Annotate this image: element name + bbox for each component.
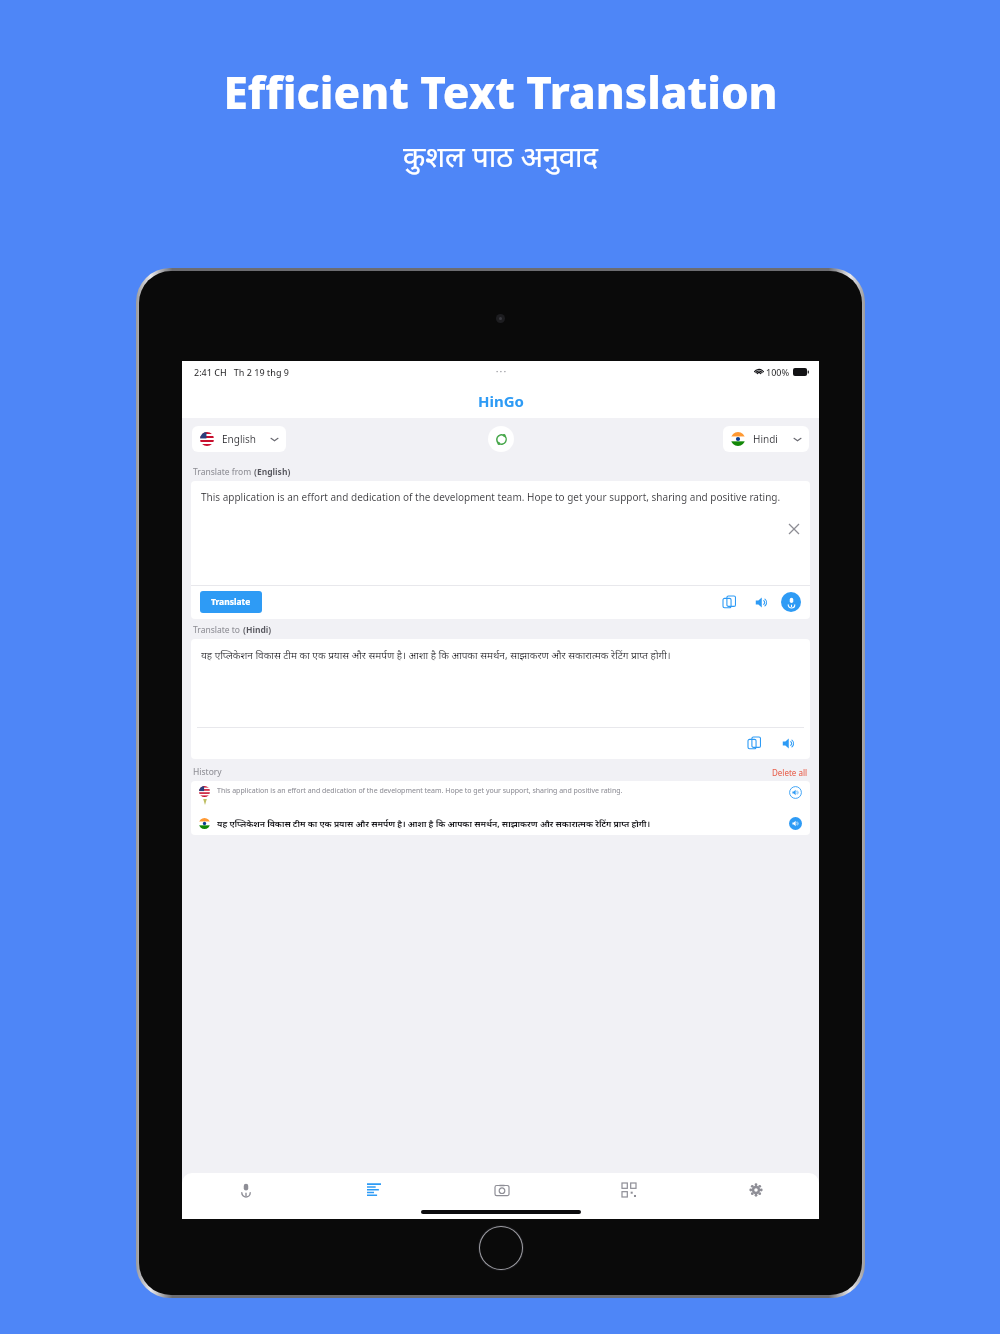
staticText: Translate [211, 596, 251, 608]
staticText: Translate from [193, 466, 254, 478]
staticText: Efficient Text Translation [223, 62, 778, 122]
staticText: कुशल पाठ अनुवाद [403, 136, 598, 175]
staticText: यह एप्लिकेशन विकास टीम का एक प्रयास और स… [217, 818, 789, 830]
button[interactable]: This application is an effort and dedica… [191, 781, 810, 835]
button[interactable]: Copy translation [745, 734, 763, 752]
staticText: यह एप्लिकेशन विकास टीम का एक प्रयास और स… [201, 648, 671, 662]
button[interactable]: Settings [692, 1173, 819, 1207]
button[interactable]: Play translation [789, 817, 802, 830]
staticText: 100% [766, 366, 790, 378]
button[interactable]: Hindi [723, 426, 809, 452]
button[interactable]: Text [310, 1173, 438, 1207]
staticText: (English) [254, 466, 291, 478]
staticText: This application is an effort and dedica… [217, 786, 789, 796]
staticText: HinGo [478, 391, 524, 411]
staticText: • • • [496, 368, 506, 376]
button[interactable]: Play source [789, 786, 802, 799]
button[interactable]: Voice input [781, 592, 801, 612]
staticText: Translate to [193, 624, 243, 636]
button[interactable]: Speak [752, 593, 770, 611]
staticText: History [193, 766, 222, 778]
button[interactable]: Delete all [772, 767, 808, 778]
button[interactable]: Voice [182, 1173, 310, 1207]
button[interactable]: Copy [720, 593, 738, 611]
button[interactable]: English [192, 426, 286, 452]
staticText: This application is an effort and dedica… [201, 490, 781, 504]
button[interactable]: Scan code [565, 1173, 692, 1207]
staticText: Delete all [772, 767, 808, 778]
button[interactable]: Swap languages [488, 426, 514, 452]
staticText: (Hindi) [243, 624, 272, 636]
button[interactable]: Speak translation [779, 734, 797, 752]
staticText: Hindi [753, 432, 778, 446]
button[interactable]: Camera [438, 1173, 565, 1207]
button[interactable]: Clear [786, 521, 802, 537]
staticText: English [222, 432, 257, 446]
staticText: 2:41 CH Th 2 19 thg 9 [194, 366, 290, 378]
button[interactable]: Translate [200, 591, 262, 613]
